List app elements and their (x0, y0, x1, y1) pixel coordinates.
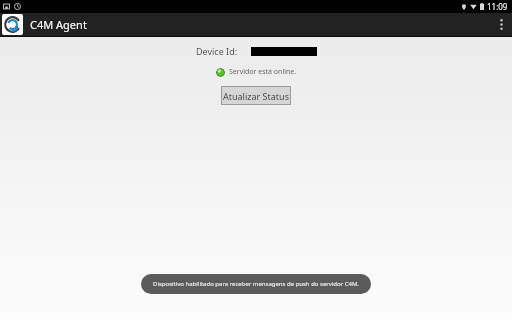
staticText: 11:09 (487, 1, 508, 12)
staticText: Dispositivo habilitado para receber mens… (153, 280, 359, 288)
staticText: Atualizar Status (223, 90, 289, 102)
staticText: Servidor está online. (229, 67, 297, 77)
button[interactable]: Atualizar Status (221, 86, 291, 105)
button[interactable]: More options (490, 13, 512, 36)
button[interactable]: App logo (2, 14, 23, 35)
staticText: Device Id: (196, 45, 238, 57)
staticText: C4M Agent (30, 17, 87, 32)
